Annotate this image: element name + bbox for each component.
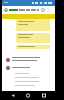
button[interactable]: Home [25,91,31,100]
button[interactable]: Recent apps [41,91,47,100]
button[interactable]: More options [46,8,50,12]
button[interactable]: Site information [4,8,8,12]
button[interactable] [16,45,50,49]
button[interactable]: Avatar [6,66,10,70]
button[interactable]: Avatar [6,58,10,62]
button[interactable]: Reload [41,8,45,12]
button[interactable]: Back [10,91,16,100]
button[interactable] [16,33,50,43]
button[interactable] [16,19,50,31]
